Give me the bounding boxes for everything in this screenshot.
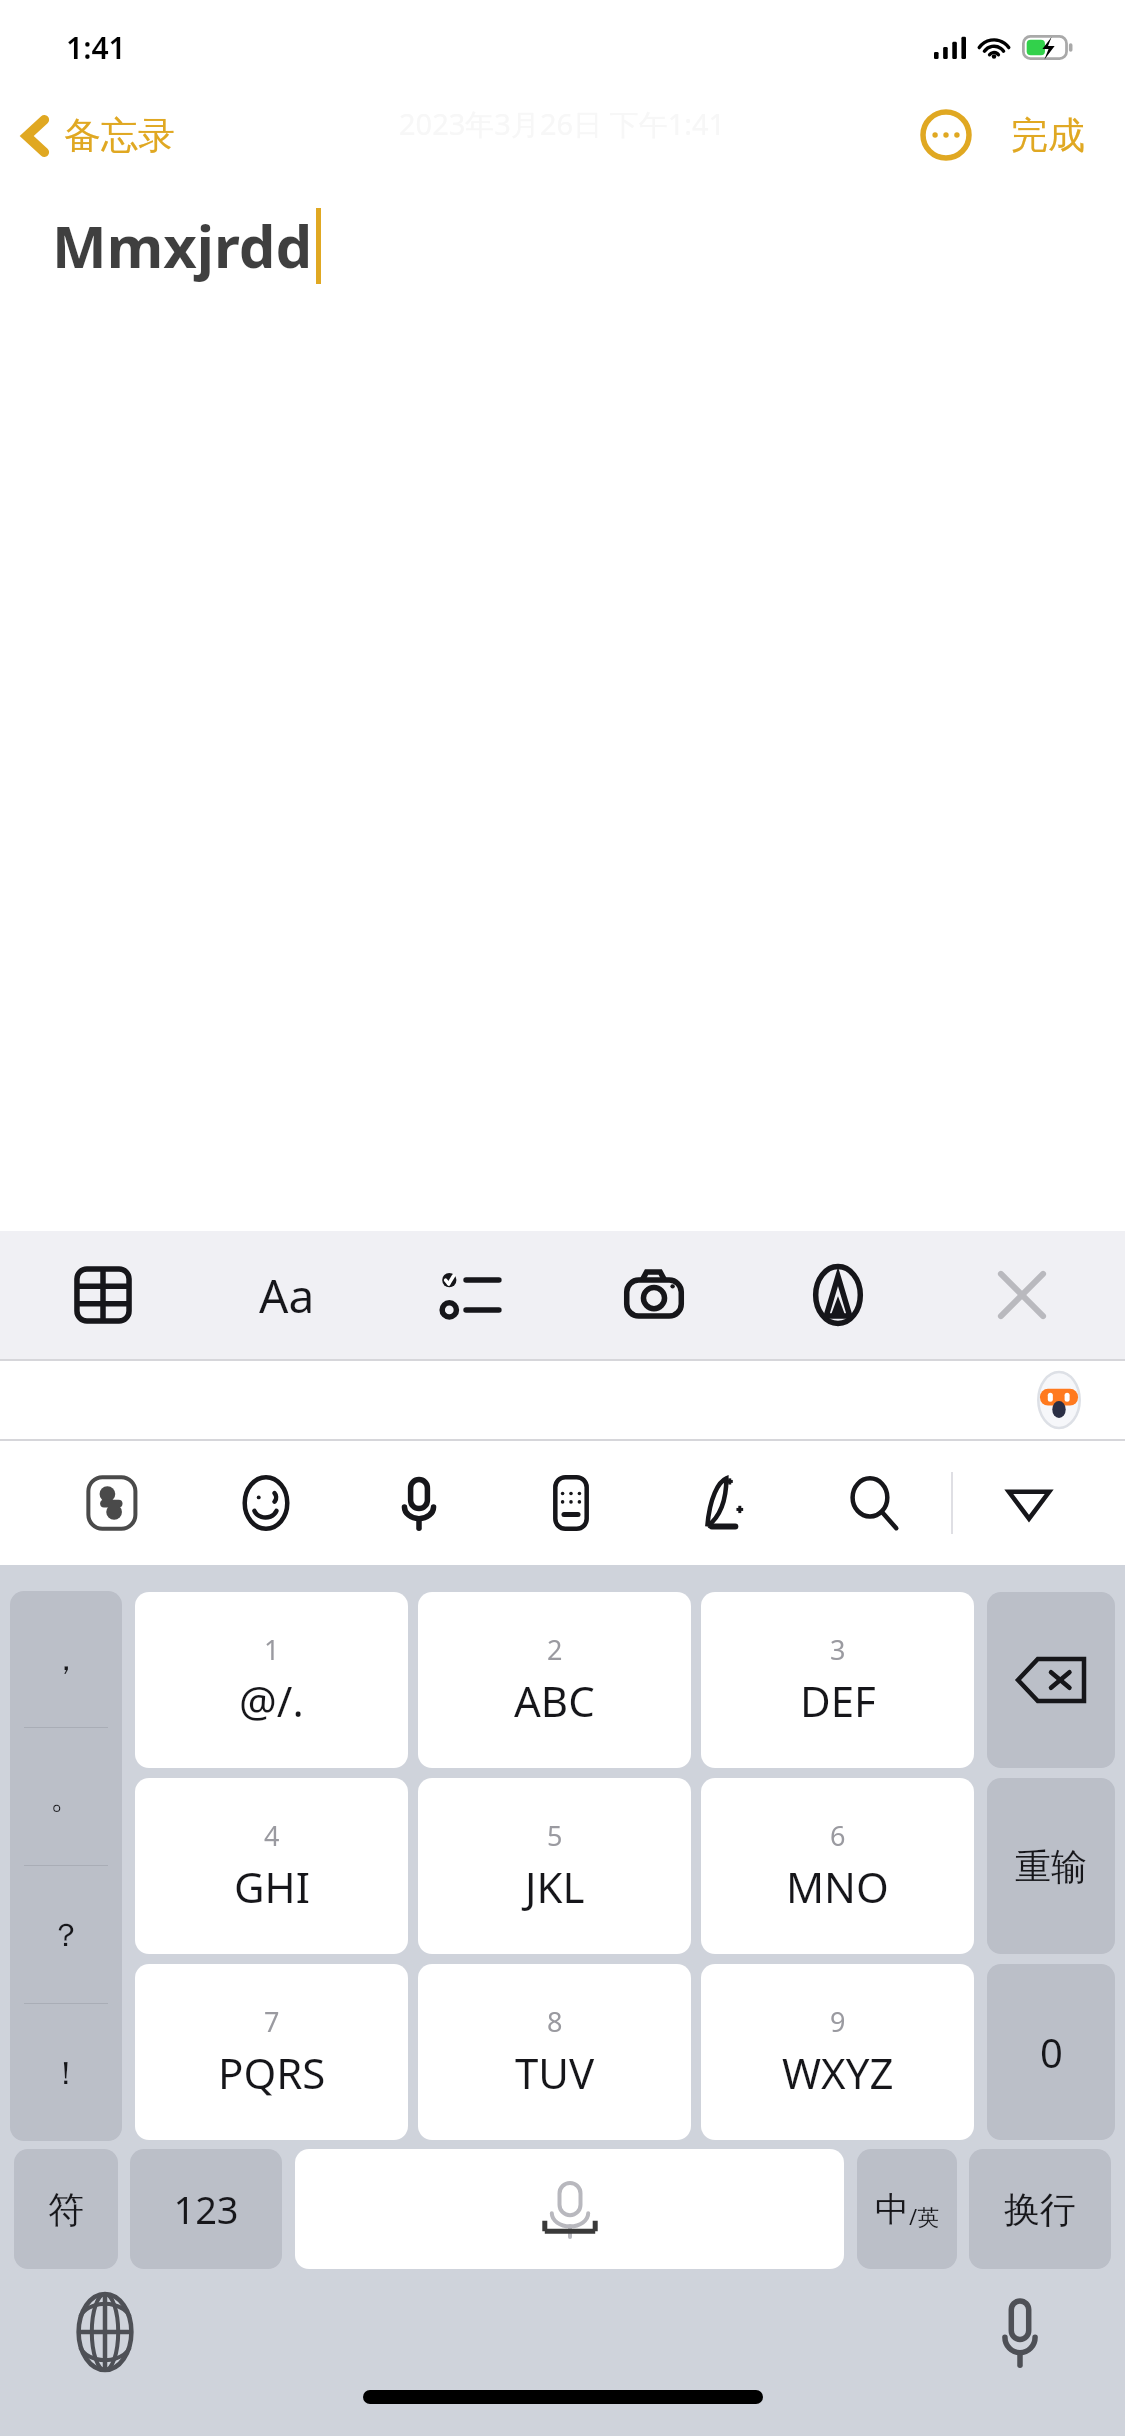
button[interactable]: 。 — [10, 1728, 122, 1865]
staticText: 1 — [264, 1631, 280, 1668]
button[interactable]: Emoji — [189, 1441, 342, 1565]
button[interactable]: Table — [60, 1252, 146, 1338]
staticText: GHI — [234, 1858, 310, 1915]
staticText: 5 — [547, 1817, 563, 1854]
button[interactable]: Voice input — [342, 1441, 495, 1565]
staticText: WXYZ — [782, 2044, 894, 2101]
staticText: Aa — [259, 1264, 315, 1327]
button[interactable]: 完成 — [1005, 106, 1091, 165]
button[interactable]: 7 — [135, 1964, 408, 2140]
button[interactable]: 换行 — [969, 2149, 1111, 2269]
button[interactable]: Search — [799, 1441, 951, 1565]
staticText: 完成 — [1011, 112, 1085, 159]
button[interactable]: 2 — [418, 1592, 691, 1768]
button[interactable]: Switch language — [62, 2289, 148, 2375]
staticText: Mmxjrdd — [52, 206, 313, 285]
button[interactable]: Markup — [795, 1252, 881, 1338]
button[interactable]: More options — [915, 104, 977, 166]
button[interactable]: 重输 — [987, 1778, 1115, 1954]
staticText: 3 — [830, 1631, 846, 1668]
staticText: DEF — [800, 1672, 876, 1729]
staticText: 重输 — [1015, 1844, 1087, 1889]
button[interactable]: Camera — [611, 1252, 697, 1338]
staticText: 中 — [875, 2188, 909, 2231]
button[interactable]: 符 — [14, 2149, 118, 2269]
button[interactable]: Keyboard layout — [495, 1441, 647, 1565]
staticText: 符 — [48, 2187, 84, 2232]
button[interactable]: Close — [979, 1252, 1065, 1338]
staticText: 123 — [173, 2183, 239, 2235]
button[interactable]: Hide keyboard — [953, 1441, 1105, 1565]
staticText: PQRS — [218, 2044, 326, 2101]
button[interactable]: 0 — [987, 1964, 1115, 2140]
button[interactable]: 123 — [130, 2149, 282, 2269]
button[interactable]: 9 — [701, 1964, 974, 2140]
button[interactable]: 4 — [135, 1778, 408, 1954]
staticText: 9 — [830, 2003, 846, 2040]
staticText: ？ — [50, 1915, 82, 1955]
button[interactable]: ？ — [10, 1866, 122, 2003]
staticText: 6 — [830, 1817, 846, 1854]
staticText: /英 — [909, 2201, 940, 2231]
button[interactable]: 1 — [135, 1592, 408, 1768]
staticText: 。 — [50, 1777, 82, 1817]
staticText: ！ — [50, 2053, 82, 2093]
staticText: TUV — [515, 2044, 595, 2101]
staticText: 4 — [264, 1817, 280, 1854]
button[interactable]: Format — [244, 1252, 330, 1338]
button[interactable]: Backspace — [987, 1592, 1115, 1768]
staticText: 8 — [547, 2003, 563, 2040]
button[interactable]: Handwriting — [647, 1441, 799, 1565]
button[interactable]: ！ — [10, 2004, 122, 2141]
button[interactable]: Dictation — [977, 2289, 1063, 2375]
staticText: 7 — [264, 2003, 280, 2040]
staticText: @/. — [239, 1672, 304, 1729]
button[interactable]: 8 — [418, 1964, 691, 2140]
button[interactable]: Back — [14, 106, 183, 165]
button[interactable]: 3 — [701, 1592, 974, 1768]
button[interactable]: Space — [295, 2149, 844, 2269]
other: Back — [22, 114, 48, 158]
staticText: JKL — [525, 1858, 585, 1915]
button[interactable]: 中 — [857, 2149, 957, 2269]
staticText: 备忘录 — [64, 112, 175, 159]
staticText: ABC — [514, 1672, 595, 1729]
button[interactable]: 5 — [418, 1778, 691, 1954]
button[interactable]: Sogou — [36, 1441, 189, 1565]
staticText: MNO — [786, 1858, 889, 1915]
button[interactable]: 6 — [701, 1778, 974, 1954]
staticText: 0 — [1040, 2025, 1063, 2079]
button[interactable]: Checklist — [428, 1252, 514, 1338]
staticText: 2 — [547, 1631, 563, 1668]
staticText: 1:41 — [66, 27, 126, 68]
staticText: ， — [50, 1639, 82, 1679]
staticText: 换行 — [1004, 2187, 1076, 2232]
button[interactable]: Sogou assistant — [1027, 1368, 1091, 1432]
button[interactable]: ， — [10, 1591, 122, 1727]
